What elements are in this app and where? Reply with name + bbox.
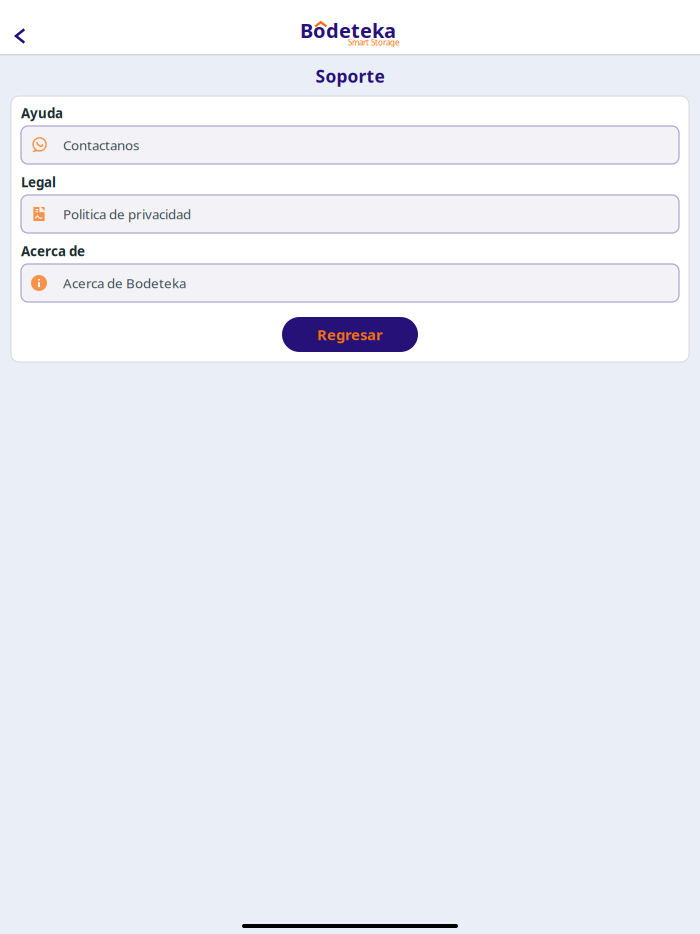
button[interactable]: Regresar: [282, 317, 418, 352]
staticText: Ayuda: [21, 104, 63, 122]
staticText: Acerca de: [21, 242, 85, 260]
button[interactable]: Acerca de Bodeteka: [21, 264, 679, 302]
button[interactable]: Back: [0, 0, 40, 59]
staticText: Bodeteka: [300, 17, 396, 44]
staticText: Regresar: [317, 325, 383, 344]
button[interactable]: Politica de privacidad: [21, 195, 679, 233]
staticText: Contactanos: [63, 136, 139, 154]
staticText: Politica de privacidad: [63, 205, 191, 223]
staticText: Smart Storage: [348, 37, 400, 48]
staticText: Legal: [21, 173, 56, 191]
staticText: Soporte: [315, 64, 384, 87]
staticText: Acerca de Bodeteka: [63, 274, 186, 292]
button[interactable]: Contactanos: [21, 126, 679, 164]
